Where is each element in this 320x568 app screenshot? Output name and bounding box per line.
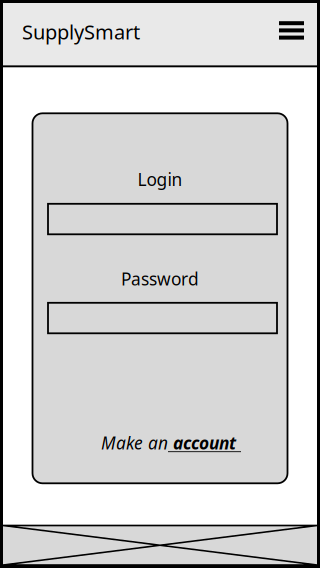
staticText: Login (137, 168, 182, 191)
button[interactable]: Password (48, 303, 277, 333)
staticText: Password (121, 267, 199, 290)
button[interactable]: Menu (269, 11, 314, 50)
button[interactable]: Make an account (43, 432, 298, 454)
button[interactable]: Login (48, 204, 277, 234)
staticText: Make an account (101, 431, 241, 454)
staticText: SupplySmart (22, 18, 140, 45)
